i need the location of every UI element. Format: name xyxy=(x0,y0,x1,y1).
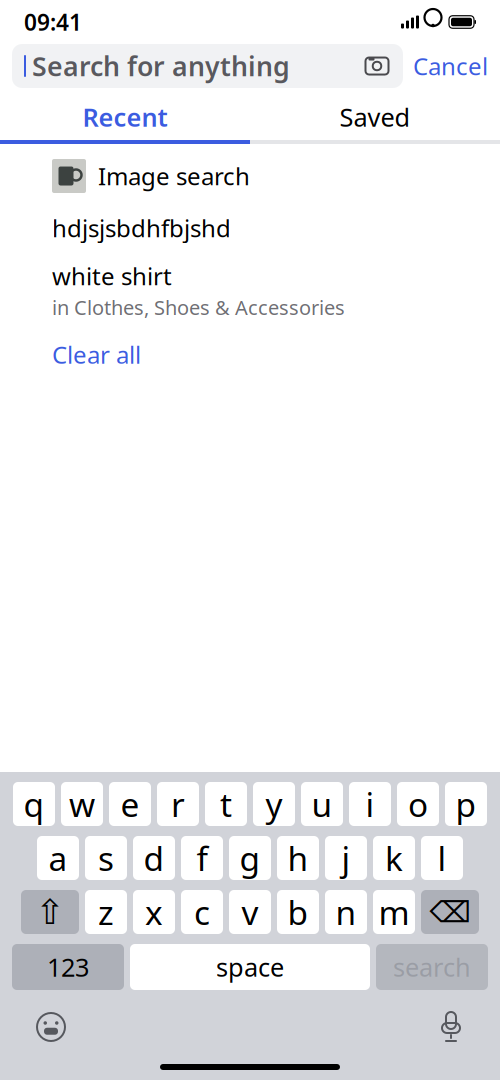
button[interactable]: a xyxy=(37,836,79,880)
button[interactable]: c xyxy=(181,890,223,934)
button[interactable]: l xyxy=(421,836,463,880)
button[interactable]: x xyxy=(133,890,175,934)
staticText: Recent xyxy=(82,100,167,134)
button[interactable]: t xyxy=(205,782,247,826)
staticText: Image search xyxy=(98,160,250,192)
button[interactable]: r xyxy=(157,782,199,826)
button[interactable]: space xyxy=(130,944,370,990)
staticText: Cancel xyxy=(413,50,488,82)
button[interactable]: Clear all xyxy=(0,326,500,382)
staticText: in Clothes, Shoes & Accessories xyxy=(52,294,345,320)
button[interactable]: Cancel xyxy=(413,50,488,82)
staticText: Clear all xyxy=(52,338,141,370)
staticText: w xyxy=(69,782,95,826)
button[interactable]: v xyxy=(229,890,271,934)
button[interactable]: p xyxy=(445,782,487,826)
staticText: search xyxy=(393,950,471,984)
staticText: o xyxy=(408,782,428,826)
button[interactable]: Emoji xyxy=(36,1012,66,1042)
staticText: f xyxy=(196,836,207,880)
button[interactable]: search xyxy=(376,944,488,990)
staticText: u xyxy=(311,782,332,826)
staticText: v xyxy=(241,890,258,934)
button[interactable]: Shift xyxy=(21,890,79,934)
button[interactable]: Dictate xyxy=(438,1011,464,1043)
staticText: 123 xyxy=(47,950,89,984)
staticText: m xyxy=(378,890,409,934)
button[interactable]: 123 xyxy=(12,944,124,990)
button[interactable]: e xyxy=(109,782,151,826)
button[interactable]: k xyxy=(373,836,415,880)
staticText: g xyxy=(239,836,260,880)
button[interactable]: n xyxy=(325,890,367,934)
staticText: d xyxy=(143,836,164,880)
staticText: space xyxy=(216,950,284,984)
staticText: l xyxy=(437,836,446,880)
staticText: t xyxy=(220,782,232,826)
button[interactable]: j xyxy=(325,836,367,880)
staticText: s xyxy=(98,836,114,880)
staticText: c xyxy=(194,890,210,934)
staticText: p xyxy=(455,782,476,826)
staticText: r xyxy=(171,782,185,826)
button[interactable]: Delete xyxy=(421,890,479,934)
button[interactable]: b xyxy=(277,890,319,934)
staticText: ⇧ xyxy=(35,892,64,932)
button[interactable]: f xyxy=(181,836,223,880)
button[interactable]: Recent xyxy=(0,94,250,140)
button[interactable]: m xyxy=(373,890,415,934)
staticText: white shirt xyxy=(52,260,172,292)
button[interactable]: g xyxy=(229,836,271,880)
button[interactable]: d xyxy=(133,836,175,880)
button[interactable]: o xyxy=(397,782,439,826)
staticText: hdjsjsbdhfbjshd xyxy=(52,212,231,244)
button[interactable]: Image search xyxy=(0,150,500,202)
staticText: ⌫ xyxy=(429,895,470,929)
button[interactable]: Saved xyxy=(250,94,500,140)
button[interactable]: s xyxy=(85,836,127,880)
staticText: i xyxy=(365,782,374,826)
staticText: k xyxy=(385,836,403,880)
staticText: x xyxy=(145,890,163,934)
button[interactable]: i xyxy=(349,782,391,826)
staticText: y xyxy=(265,782,282,826)
button[interactable]: u xyxy=(301,782,343,826)
button[interactable]: Search for anything xyxy=(12,44,403,88)
staticText: q xyxy=(23,782,44,826)
button[interactable]: q xyxy=(13,782,55,826)
staticText: a xyxy=(48,836,67,880)
staticText: b xyxy=(287,890,308,934)
staticText: Saved xyxy=(339,100,410,134)
staticText: h xyxy=(287,836,308,880)
button[interactable]: h xyxy=(277,836,319,880)
staticText: z xyxy=(98,890,114,934)
staticText: Search for anything xyxy=(32,48,290,84)
button[interactable]: z xyxy=(85,890,127,934)
button[interactable]: white shirt xyxy=(0,254,500,326)
button[interactable]: hdjsjsbdhfbjshd xyxy=(0,202,500,254)
staticText: 09:41 xyxy=(24,7,82,37)
button[interactable]: w xyxy=(61,782,103,826)
staticText: n xyxy=(335,890,356,934)
staticText: e xyxy=(120,782,139,826)
button[interactable]: y xyxy=(253,782,295,826)
staticText: j xyxy=(341,836,350,880)
